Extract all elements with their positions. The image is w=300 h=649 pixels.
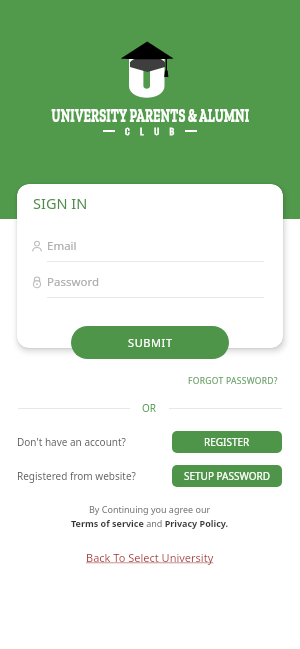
button[interactable]: Back To Select University bbox=[82, 546, 218, 569]
staticText: Registered from website? bbox=[17, 469, 136, 483]
staticText: UNIVERSITY PARENTS & ALUMNI bbox=[52, 105, 249, 127]
staticText: Email bbox=[47, 238, 77, 254]
staticText: FORGOT PASSWORD? bbox=[188, 375, 278, 387]
staticText: Don't have an account? bbox=[17, 435, 126, 449]
staticText: REGISTER bbox=[204, 435, 250, 449]
staticText: Terms of service and Privacy Policy. bbox=[71, 517, 229, 529]
button[interactable]: REGISTER bbox=[172, 431, 282, 453]
staticText: By Continuing you agree our bbox=[89, 503, 211, 515]
button[interactable]: SUBMIT bbox=[71, 326, 229, 359]
staticText: OR bbox=[142, 401, 157, 415]
staticText: SETUP PASSWORD bbox=[184, 469, 271, 483]
staticText: Back To Select University bbox=[86, 550, 214, 565]
button[interactable]: SETUP PASSWORD bbox=[172, 465, 282, 487]
staticText: Password bbox=[47, 274, 100, 290]
staticText: SUBMIT bbox=[128, 335, 173, 350]
staticText: C L U B bbox=[125, 124, 179, 137]
staticText: SIGN IN bbox=[33, 193, 88, 213]
button[interactable]: FORGOT PASSWORD? bbox=[184, 371, 282, 391]
